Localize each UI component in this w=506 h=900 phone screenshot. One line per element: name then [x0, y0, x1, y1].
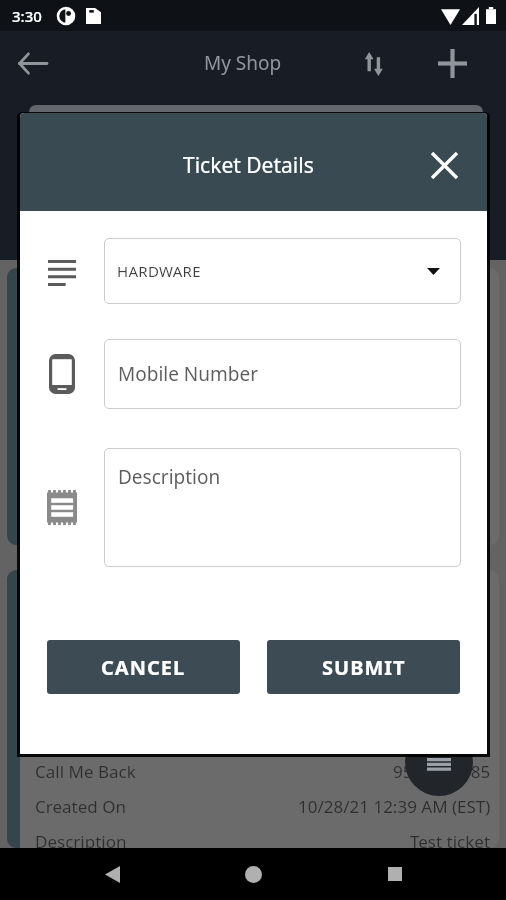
staticText: 9500000085: [393, 760, 491, 783]
staticText: HARDWARE: [117, 261, 201, 281]
staticText: Description: [35, 830, 127, 848]
staticText: Test ticket: [410, 830, 491, 848]
staticText: My Shop: [204, 50, 282, 76]
button[interactable]: Mobile Number: [104, 339, 461, 409]
button[interactable]: Description: [104, 448, 461, 567]
staticText: Call Me Back: [35, 760, 136, 783]
button[interactable]: Add: [424, 35, 481, 92]
button[interactable]: Sort: [349, 39, 398, 88]
button[interactable]: Close: [423, 144, 465, 186]
button[interactable]: SUBMIT: [267, 640, 460, 694]
staticText: CANCEL: [101, 654, 186, 681]
button[interactable]: Back: [0, 31, 64, 96]
staticText: Ticket Details: [183, 151, 314, 180]
button[interactable]: CANCEL: [47, 640, 240, 694]
staticText: SUBMIT: [322, 654, 406, 681]
button[interactable]: Recents: [365, 848, 425, 900]
staticText: 10/28/21 12:39 AM (EST): [298, 795, 491, 818]
staticText: Mobile Number: [118, 361, 259, 387]
button[interactable]: Back: [82, 848, 142, 900]
staticText: 3:30: [12, 6, 42, 26]
staticText: Description: [118, 464, 221, 490]
staticText: Created On: [35, 795, 126, 818]
button[interactable]: HARDWARE: [104, 238, 461, 304]
button[interactable]: Menu: [405, 728, 473, 796]
button[interactable]: Home: [223, 848, 283, 900]
